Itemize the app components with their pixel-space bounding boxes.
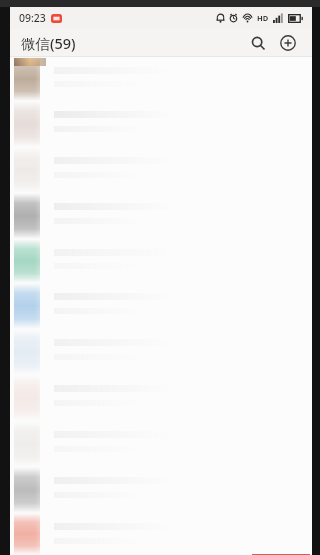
button[interactable]	[10, 513, 312, 555]
button[interactable]	[10, 329, 312, 375]
button[interactable]	[10, 283, 312, 329]
staticText: HD	[257, 13, 269, 23]
button[interactable]: Search	[245, 30, 271, 56]
button[interactable]	[10, 101, 312, 147]
button[interactable]: Add	[275, 30, 301, 56]
button[interactable]	[10, 193, 312, 239]
button[interactable]	[10, 147, 312, 193]
button[interactable]	[10, 421, 312, 467]
staticText: 09:23	[19, 11, 46, 25]
button[interactable]	[10, 57, 312, 101]
button[interactable]	[10, 239, 312, 283]
button[interactable]	[10, 467, 312, 513]
staticText: 微信(59)	[21, 33, 76, 53]
button[interactable]	[10, 375, 312, 421]
